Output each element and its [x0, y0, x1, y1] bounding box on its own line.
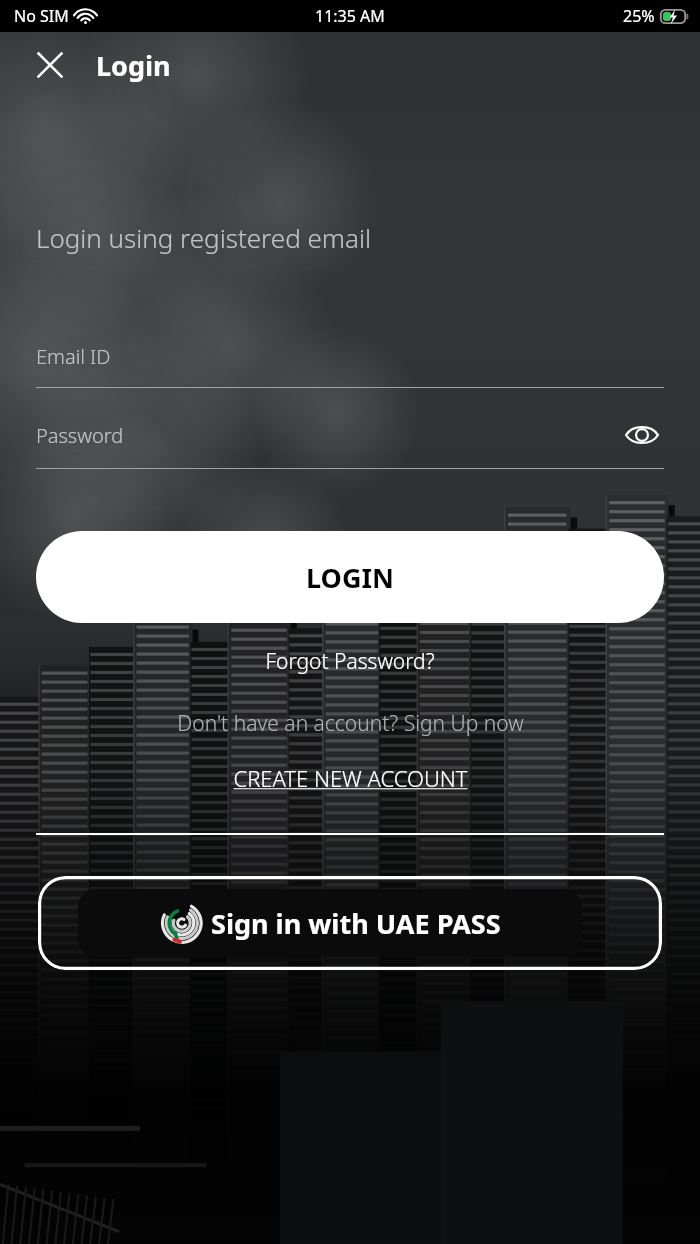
button[interactable]: CREATE NEW ACCOUNT — [0, 763, 700, 793]
staticText: 25% — [623, 5, 655, 27]
button[interactable]: Email ID — [36, 343, 664, 388]
staticText: 11:35 AM — [315, 5, 385, 27]
button[interactable]: Password — [36, 413, 664, 457]
staticText: Login — [96, 47, 171, 84]
staticText: Email ID — [36, 343, 111, 370]
staticText: Password — [36, 422, 124, 449]
staticText: Forgot Password? — [265, 647, 435, 676]
staticText: Login using registered email — [36, 220, 372, 255]
button[interactable]: Forgot Password? — [0, 647, 700, 676]
staticText: CREATE NEW ACCOUNT — [233, 763, 468, 793]
staticText: Don't have an account? Sign Up now — [177, 709, 524, 738]
button[interactable]: Sign in with UAE PASS — [38, 876, 662, 970]
button[interactable]: LOGIN — [36, 531, 664, 623]
staticText: Sign in with UAE PASS — [211, 905, 501, 942]
button[interactable]: Show password — [620, 413, 664, 457]
button[interactable]: Don't have an account? Sign Up now — [0, 709, 700, 738]
staticText: LOGIN — [306, 559, 394, 596]
staticText: No SIM — [14, 5, 69, 27]
button[interactable]: Close — [24, 39, 76, 91]
